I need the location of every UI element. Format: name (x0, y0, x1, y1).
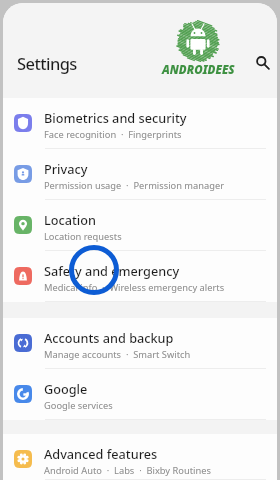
staticText: Face recognition · Fingerprints (44, 128, 182, 141)
staticText: Advanced features (44, 445, 158, 462)
button[interactable]: Accounts and backup (3, 318, 277, 369)
staticText: Manage accounts · Smart Switch (44, 348, 191, 361)
button[interactable]: Privacy (3, 149, 277, 200)
staticText: Google (44, 380, 88, 397)
button[interactable]: Search (246, 49, 276, 79)
staticText: Settings (17, 52, 77, 74)
staticText: Privacy (44, 160, 88, 177)
button[interactable]: Biometrics and security (3, 98, 277, 149)
staticText: Permission usage · Permission manager (44, 179, 224, 192)
staticText: Accounts and backup (44, 329, 174, 346)
staticText: Safety and emergency (44, 262, 180, 279)
button[interactable]: Safety and emergency (3, 251, 277, 302)
staticText: Biometrics and security (44, 109, 187, 126)
staticText: Android Auto · Labs · Bixby Routines (44, 464, 211, 477)
button[interactable]: Google (3, 369, 277, 420)
button[interactable]: Advanced features (3, 434, 277, 480)
staticText: Location (44, 211, 97, 228)
button[interactable]: Location (3, 200, 277, 251)
staticText: Medical info · Wireless emergency alerts (44, 281, 225, 294)
staticText: Location requests (44, 230, 122, 243)
staticText: ANDROIDEES (162, 62, 235, 78)
staticText: Google services (44, 399, 113, 412)
